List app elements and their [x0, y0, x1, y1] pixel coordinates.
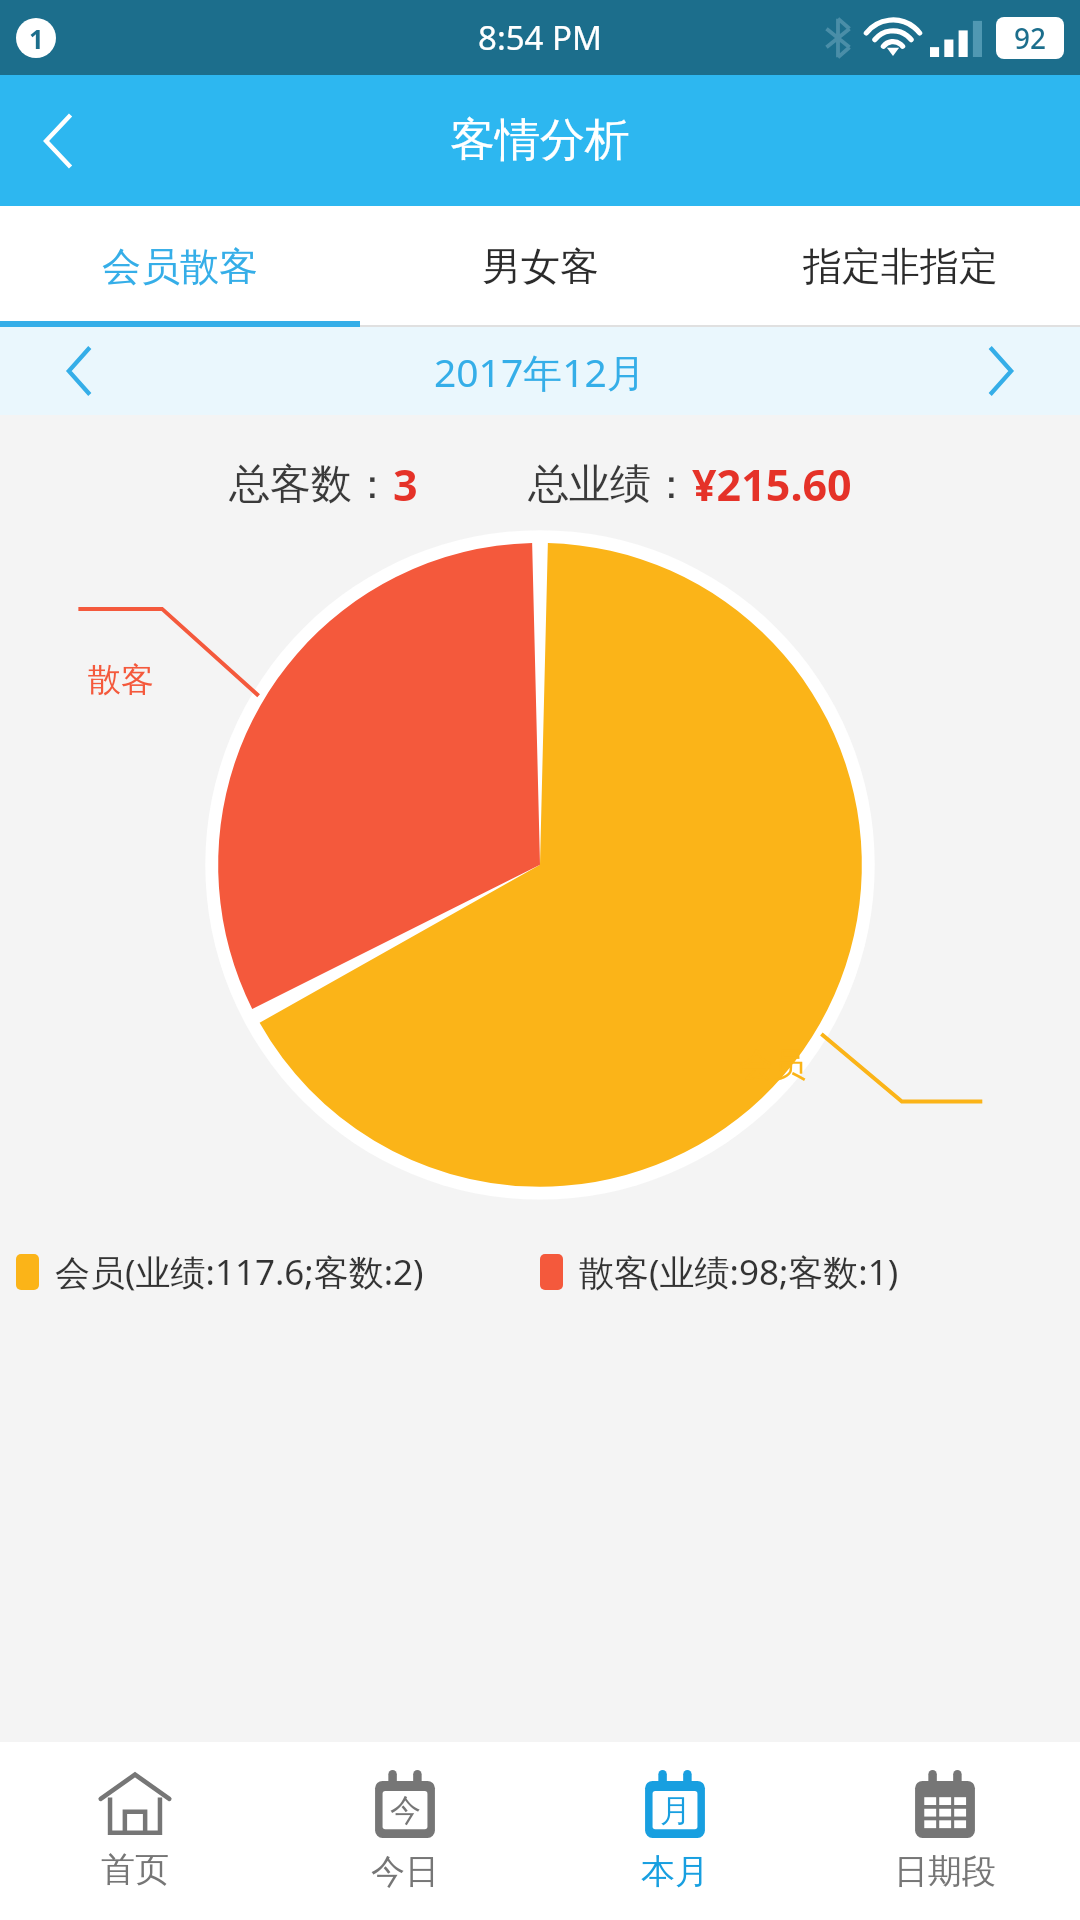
- staticText: 总客数：: [229, 459, 393, 511]
- staticText: 散客(业绩:98;客数:1): [579, 1248, 899, 1296]
- button[interactable]: 下一月: [920, 327, 1080, 415]
- staticText: 今日: [371, 1850, 439, 1893]
- button[interactable]: 首页: [0, 1742, 270, 1920]
- staticText: 会员: [740, 1044, 806, 1086]
- staticText: 总业绩：: [528, 459, 692, 511]
- staticText: 首页: [101, 1848, 169, 1891]
- staticText: 本月: [641, 1850, 709, 1893]
- staticText: 1: [29, 21, 44, 56]
- staticText: 3: [393, 455, 418, 514]
- staticText: 日期段: [894, 1850, 996, 1893]
- staticText: 会员散客: [102, 242, 258, 291]
- staticText: 会员(业绩:117.6;客数:2): [55, 1248, 424, 1296]
- button[interactable]: 指定非指定: [720, 206, 1080, 327]
- staticText: 92: [1014, 19, 1047, 57]
- staticText: 客情分析: [450, 112, 630, 169]
- button[interactable]: 返回: [0, 75, 118, 206]
- staticText: 2017年12月: [434, 345, 646, 398]
- staticText: 8:54 PM: [478, 15, 602, 60]
- button[interactable]: 今: [270, 1742, 540, 1920]
- button[interactable]: 会员散客: [0, 206, 360, 327]
- button[interactable]: 月: [540, 1742, 810, 1920]
- staticText: 男女客: [482, 242, 599, 291]
- button[interactable]: 男女客: [360, 206, 720, 327]
- staticText: 指定非指定: [803, 242, 998, 291]
- staticText: 今: [390, 1791, 421, 1830]
- staticText: 散客: [88, 659, 154, 701]
- button[interactable]: 日期段: [810, 1742, 1080, 1920]
- staticText: ¥215.60: [692, 455, 852, 514]
- button[interactable]: 上一月: [0, 327, 160, 415]
- staticText: 月: [660, 1791, 691, 1830]
